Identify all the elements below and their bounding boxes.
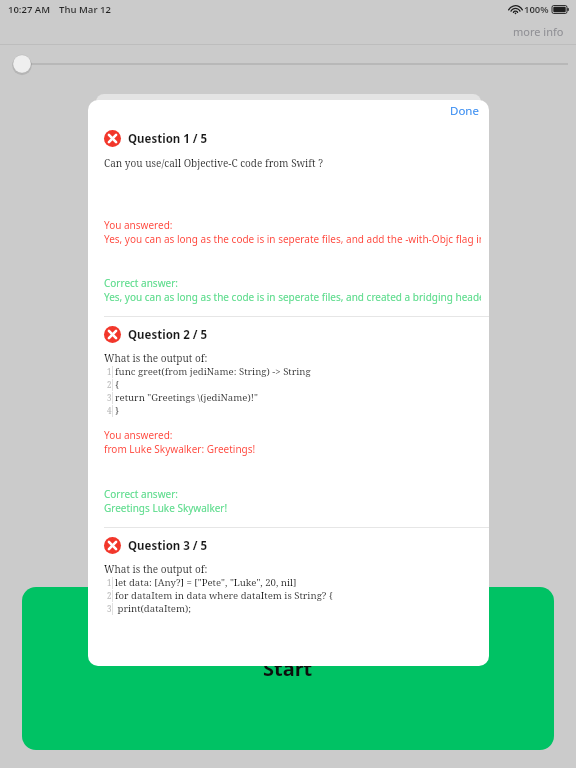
staticText: 4: [107, 405, 112, 416]
staticText: Yes, you can as long as the code is in s…: [104, 290, 481, 304]
staticText: Done: [450, 103, 479, 118]
staticText: Thu Mar 12: [59, 3, 111, 16]
staticText: {: [115, 378, 120, 391]
button[interactable]: Progress slider: [0, 45, 576, 90]
staticText: from Luke Skywalker: Greetings!: [104, 442, 256, 456]
staticText: more info: [513, 24, 564, 39]
staticText: 100%: [524, 3, 549, 16]
staticText: let data: [Any?] = ["Pete", "Luke", 20, …: [115, 576, 297, 589]
staticText: 10:27 AM: [8, 3, 51, 16]
staticText: print(dataItem);: [115, 602, 192, 615]
staticText: You answered:: [104, 428, 173, 442]
staticText: Correct answer:: [104, 487, 178, 501]
staticText: 2: [107, 590, 112, 601]
button[interactable]: Done: [440, 100, 489, 121]
staticText: for dataItem in data where dataItem is S…: [115, 589, 333, 602]
staticText: 1: [107, 366, 112, 377]
staticText: Yes, you can as long as the code is in s…: [104, 232, 481, 246]
button[interactable]: more info: [0, 19, 576, 44]
staticText: Start: [263, 655, 313, 682]
staticText: Correct answer:: [104, 276, 178, 290]
staticText: 1: [107, 577, 112, 588]
staticText: 2: [107, 379, 112, 390]
staticText: What is the output of:: [104, 351, 208, 365]
staticText: What is the output of:: [104, 562, 208, 576]
staticText: func greet(from jediName: String) -> Str…: [115, 365, 311, 378]
staticText: Greetings Luke Skywalker!: [104, 501, 228, 515]
staticText: Can you use/call Objective-C code from S…: [104, 156, 323, 170]
staticText: Question 1 / 5: [128, 131, 208, 147]
staticText: Question 3 / 5: [128, 538, 208, 554]
staticText: }: [115, 404, 120, 417]
staticText: You answered:: [104, 218, 173, 232]
staticText: 3: [107, 392, 112, 403]
staticText: 3: [107, 603, 112, 614]
staticText: return "Greetings \(jediName)!": [115, 391, 258, 404]
button[interactable]: Start: [22, 587, 554, 750]
staticText: Question 2 / 5: [128, 327, 208, 343]
